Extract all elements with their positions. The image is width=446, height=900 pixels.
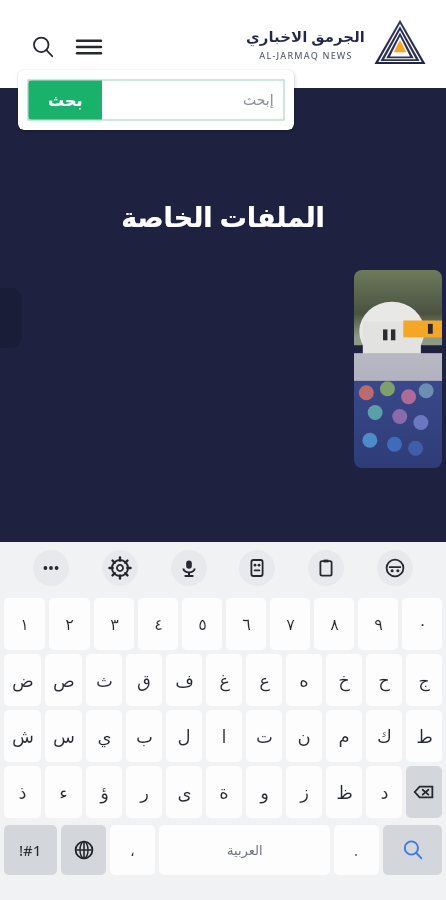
button[interactable]: بحث bbox=[28, 80, 102, 120]
button[interactable]: ٣ bbox=[94, 598, 134, 650]
staticText: و bbox=[260, 782, 269, 803]
button[interactable]: م bbox=[326, 710, 362, 762]
button[interactable]: ب bbox=[126, 710, 162, 762]
button[interactable]: Search bbox=[24, 28, 62, 66]
button[interactable]: ، bbox=[110, 825, 155, 875]
button[interactable]: ٢ bbox=[49, 598, 90, 650]
button[interactable]: More options bbox=[33, 550, 69, 586]
button[interactable]: ت bbox=[246, 710, 282, 762]
staticText: ز bbox=[300, 782, 309, 803]
button[interactable]: غ bbox=[206, 654, 242, 706]
staticText: د bbox=[380, 782, 389, 803]
button[interactable]: ج bbox=[406, 654, 442, 706]
button[interactable]: ٧ bbox=[270, 598, 310, 650]
button[interactable]: ٩ bbox=[358, 598, 398, 650]
button[interactable]: ع bbox=[246, 654, 282, 706]
staticText: . bbox=[354, 840, 359, 860]
staticText: س bbox=[53, 726, 75, 747]
button[interactable]: الجرمق الاخباري bbox=[246, 14, 429, 72]
button[interactable]: خ bbox=[326, 654, 362, 706]
staticText: غ bbox=[219, 670, 230, 691]
staticText: الملفات الخاصة bbox=[121, 198, 325, 235]
button[interactable]: ه bbox=[286, 654, 322, 706]
button[interactable]: إبحث bbox=[102, 80, 284, 120]
staticText: ، bbox=[130, 842, 135, 859]
button[interactable]: ك bbox=[366, 710, 402, 762]
button[interactable]: ي bbox=[86, 710, 122, 762]
staticText: ظ bbox=[336, 782, 353, 803]
staticText: ٨ bbox=[330, 615, 339, 634]
button[interactable]: ١ bbox=[4, 598, 45, 650]
button[interactable]: Change language bbox=[61, 825, 106, 875]
staticText: ٦ bbox=[242, 615, 251, 634]
button[interactable]: !#1 bbox=[4, 825, 57, 875]
staticText: ث bbox=[96, 670, 113, 691]
staticText: ء bbox=[59, 782, 68, 803]
button[interactable]: ط bbox=[406, 710, 442, 762]
staticText: ل bbox=[177, 726, 191, 747]
button[interactable]: ف bbox=[166, 654, 202, 706]
button[interactable]: ٥ bbox=[182, 598, 222, 650]
staticText: ت bbox=[256, 726, 273, 747]
button[interactable]: العربية bbox=[159, 825, 330, 875]
staticText: ص bbox=[53, 670, 75, 691]
button[interactable]: ؤ bbox=[86, 766, 122, 818]
button[interactable]: Search bbox=[383, 825, 442, 875]
staticText: ي bbox=[97, 726, 112, 747]
staticText: ى bbox=[177, 782, 192, 803]
button[interactable]: ض bbox=[4, 654, 41, 706]
staticText: ٧ bbox=[286, 615, 295, 634]
staticText: ٩ bbox=[374, 615, 383, 634]
staticText: ج bbox=[418, 670, 430, 691]
staticText: خ bbox=[338, 670, 350, 691]
button[interactable]: ق bbox=[126, 654, 162, 706]
button[interactable]: ظ bbox=[326, 766, 362, 818]
button[interactable]: ن bbox=[286, 710, 322, 762]
button[interactable]: ز bbox=[286, 766, 322, 818]
button[interactable]: ء bbox=[45, 766, 82, 818]
staticText: ا bbox=[221, 726, 227, 747]
button[interactable]: ش bbox=[4, 710, 41, 762]
button[interactable]: ٦ bbox=[226, 598, 266, 650]
button[interactable]: Clipboard bbox=[308, 550, 344, 586]
staticText: إبحث bbox=[243, 92, 274, 108]
staticText: ٠ bbox=[418, 615, 427, 634]
button[interactable]: ٤ bbox=[138, 598, 178, 650]
button[interactable]: Themes bbox=[377, 550, 413, 586]
staticText: ب bbox=[136, 726, 153, 747]
button[interactable]: ر bbox=[126, 766, 162, 818]
staticText: ن bbox=[297, 726, 311, 747]
staticText: ع bbox=[259, 670, 270, 691]
button[interactable]: ٠ bbox=[402, 598, 442, 650]
button[interactable]: د bbox=[366, 766, 402, 818]
button[interactable]: ة bbox=[206, 766, 242, 818]
button[interactable]: ح bbox=[366, 654, 402, 706]
staticText: ١ bbox=[20, 615, 29, 634]
staticText: ذ bbox=[18, 782, 27, 803]
button[interactable]: Menu bbox=[70, 28, 108, 66]
staticText: ٣ bbox=[110, 615, 119, 634]
staticText: الجرمق الاخباري bbox=[246, 26, 365, 46]
button[interactable]: و bbox=[246, 766, 282, 818]
staticText: ش bbox=[12, 726, 34, 747]
button[interactable]: Settings bbox=[102, 550, 138, 586]
button[interactable]: س bbox=[45, 710, 82, 762]
button[interactable]: Backspace bbox=[406, 766, 442, 818]
staticText: م bbox=[338, 726, 350, 747]
staticText: ط bbox=[416, 726, 433, 747]
button[interactable]: ى bbox=[166, 766, 202, 818]
staticText: !#1 bbox=[19, 840, 42, 860]
button[interactable]: . bbox=[334, 825, 379, 875]
button[interactable]: ص bbox=[45, 654, 82, 706]
button[interactable]: ل bbox=[166, 710, 202, 762]
button[interactable]: Stickers bbox=[239, 550, 275, 586]
button[interactable]: ٨ bbox=[314, 598, 354, 650]
button[interactable]: ا bbox=[206, 710, 242, 762]
staticText: ف bbox=[175, 670, 194, 691]
button[interactable]: Article photo bbox=[354, 270, 442, 468]
button[interactable]: ث bbox=[86, 654, 122, 706]
button[interactable]: Voice input bbox=[171, 550, 207, 586]
button[interactable]: ذ bbox=[4, 766, 41, 818]
staticText: العربية bbox=[227, 843, 263, 858]
